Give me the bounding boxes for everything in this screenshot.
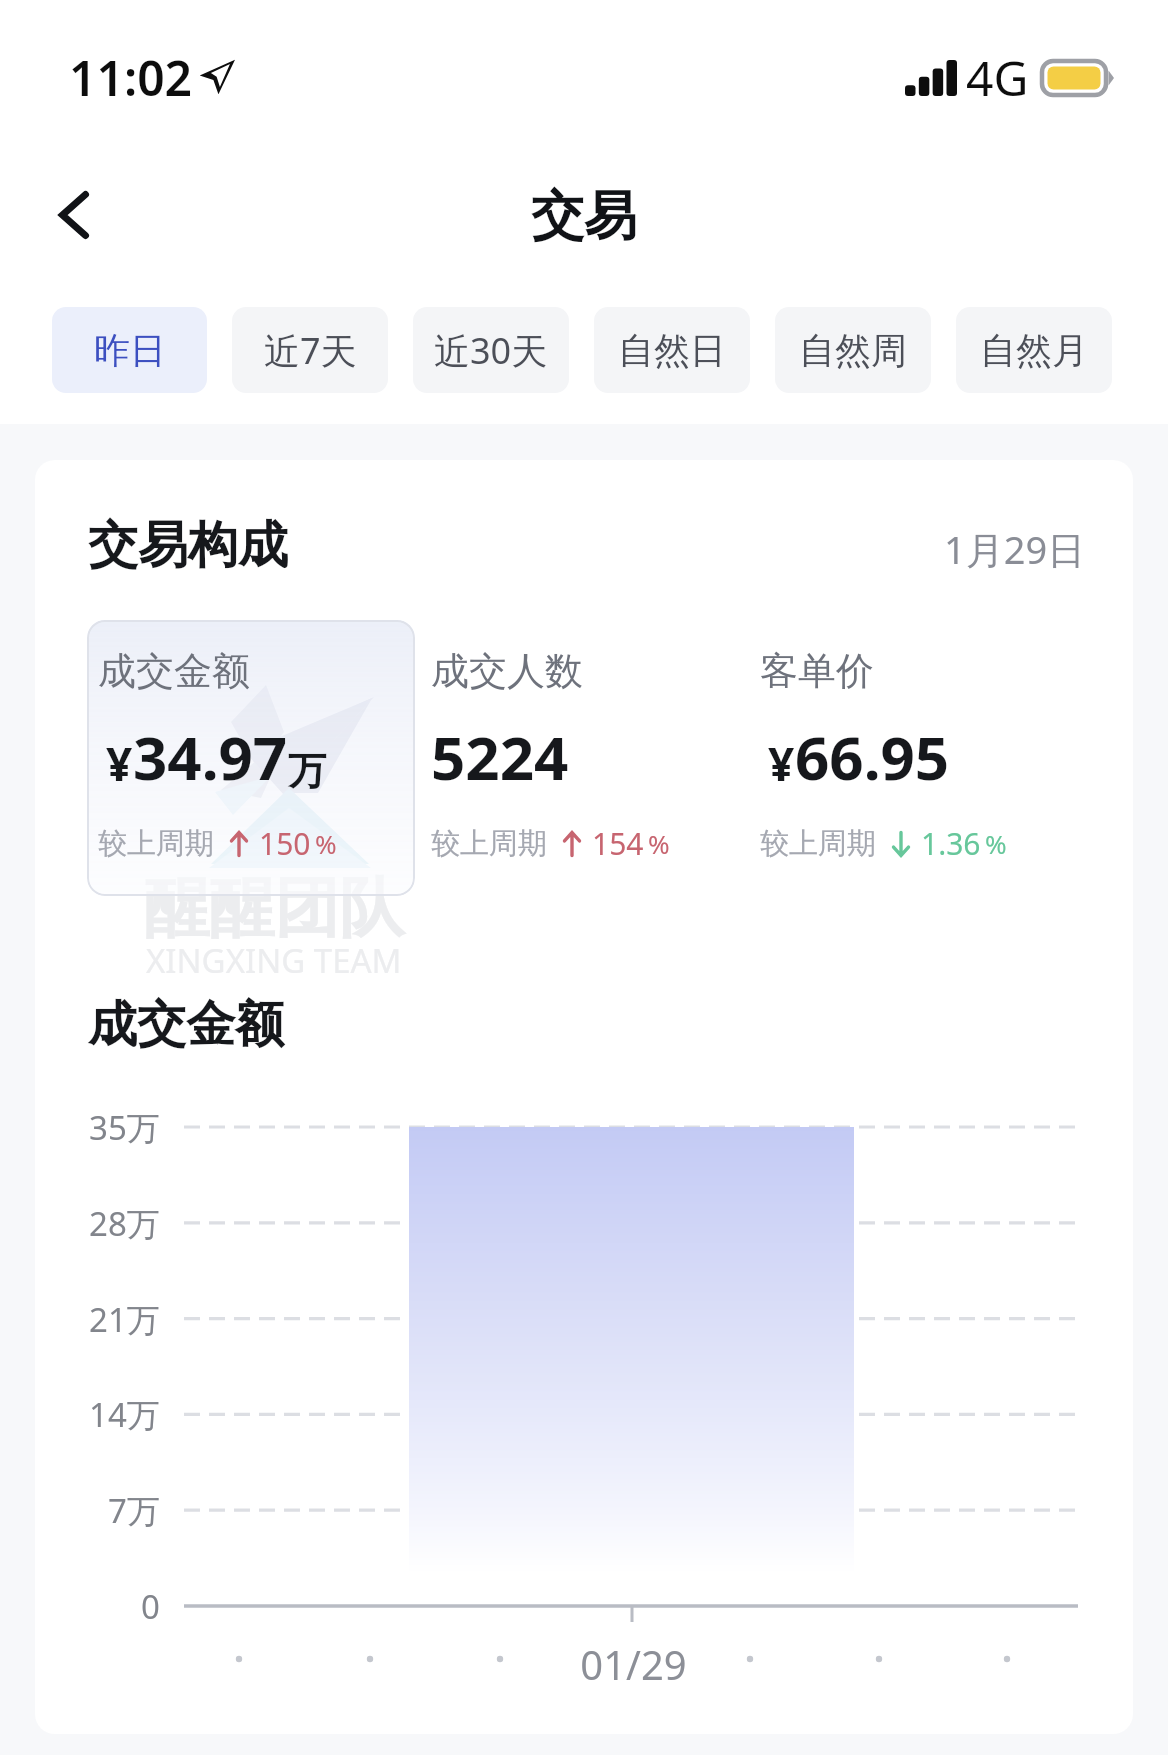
- staticText: 自然月: [980, 328, 1088, 373]
- staticText: 成交金额: [88, 994, 284, 1056]
- staticText: 成交人数: [431, 647, 583, 695]
- staticText: ¥: [768, 732, 795, 795]
- staticText: %: [648, 826, 670, 861]
- button[interactable]: 自然日: [594, 307, 750, 393]
- button[interactable]: 自然周: [775, 307, 931, 393]
- staticText: 34.97: [133, 716, 288, 798]
- staticText: ¥: [106, 732, 133, 795]
- staticText: XINGXING TEAM: [146, 938, 402, 983]
- staticText: 66.95: [795, 716, 950, 798]
- staticText: 35万: [89, 1105, 160, 1150]
- staticText: 较上周期: [760, 825, 876, 862]
- staticText: 自然日: [618, 328, 726, 373]
- button[interactable]: Back: [18, 159, 130, 271]
- button[interactable]: 自然月: [956, 307, 1112, 393]
- staticText: 154: [592, 823, 644, 864]
- staticText: 万: [288, 747, 326, 795]
- staticText: 0: [141, 1584, 160, 1629]
- staticText: 5224: [431, 716, 569, 798]
- staticText: 醒醒团队: [144, 867, 404, 949]
- staticText: 1.36: [921, 823, 981, 864]
- staticText: 客单价: [760, 647, 874, 695]
- button[interactable]: [87, 620, 415, 896]
- staticText: 近7天: [264, 326, 357, 375]
- staticText: 较上周期: [98, 825, 214, 862]
- button[interactable]: 昨日: [52, 307, 207, 393]
- staticText: 14万: [89, 1392, 160, 1437]
- button[interactable]: 成交人数: [431, 647, 670, 864]
- staticText: 11:02: [69, 45, 193, 110]
- staticText: 交易: [531, 183, 637, 250]
- staticText: 150: [259, 823, 311, 864]
- staticText: 较上周期: [431, 825, 547, 862]
- staticText: %: [985, 826, 1007, 861]
- button[interactable]: 近30天: [413, 307, 569, 393]
- staticText: 28万: [89, 1201, 160, 1246]
- staticText: 1月29日: [944, 523, 1086, 575]
- staticText: 成交金额: [98, 647, 250, 695]
- staticText: 01/29: [580, 1637, 687, 1691]
- staticText: 自然周: [799, 328, 907, 373]
- button[interactable]: 近7天: [232, 307, 388, 393]
- staticText: 4G: [966, 45, 1029, 110]
- button[interactable]: 成交金额: [98, 647, 337, 864]
- staticText: 7万: [108, 1488, 160, 1533]
- staticText: 近30天: [434, 326, 548, 375]
- staticText: %: [315, 826, 337, 861]
- staticText: 昨日: [94, 328, 166, 373]
- staticText: 交易构成: [88, 514, 288, 574]
- button[interactable]: 客单价: [760, 647, 1007, 864]
- staticText: 21万: [89, 1297, 160, 1342]
